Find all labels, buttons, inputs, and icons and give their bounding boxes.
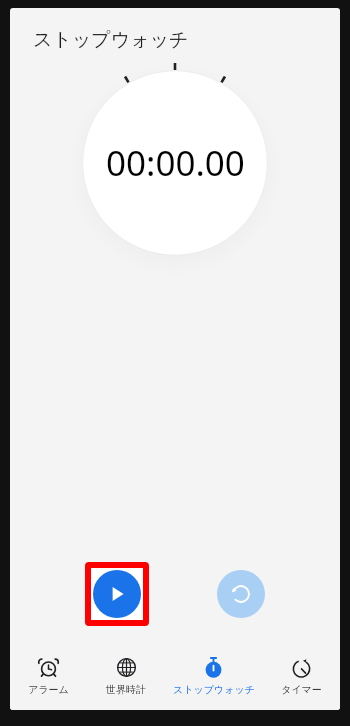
staticText: ストップウォッチ — [33, 28, 189, 52]
button[interactable]: 開始 — [93, 570, 141, 618]
button[interactable]: タイマー — [262, 648, 340, 710]
button[interactable]: ストップウォッチ — [165, 648, 262, 710]
staticText: アラーム — [28, 683, 69, 696]
staticText: 00:00.00 — [106, 139, 245, 187]
button[interactable]: アラーム — [10, 648, 87, 710]
button[interactable]: リセット — [217, 570, 265, 618]
button[interactable]: 世界時計 — [87, 648, 165, 710]
staticText: 世界時計 — [106, 683, 146, 696]
staticText: タイマー — [281, 683, 322, 696]
staticText: ストップウォッチ — [173, 683, 255, 696]
